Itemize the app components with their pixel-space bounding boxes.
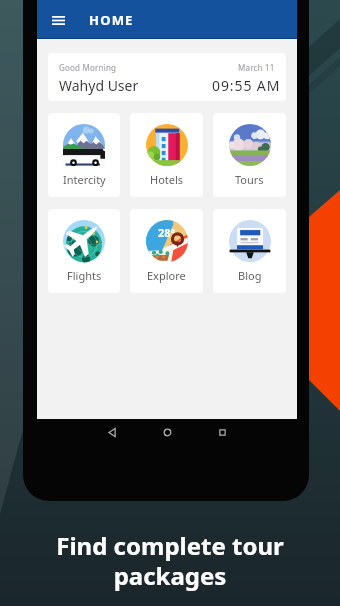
button[interactable]: 28°	[130, 209, 203, 293]
staticText: Flights	[67, 268, 102, 283]
button[interactable]: Flights	[48, 209, 120, 293]
staticText: Tours	[235, 172, 264, 187]
staticText: 28°	[158, 225, 176, 240]
button[interactable]: Menu	[52, 13, 65, 27]
staticText: Wahyd User	[59, 76, 139, 95]
staticText: HOME	[89, 11, 134, 29]
button[interactable]: Intercity	[48, 113, 120, 197]
button[interactable]: Back	[107, 427, 118, 438]
button[interactable]: Hotels	[130, 113, 203, 197]
staticText: Hotels	[150, 172, 184, 187]
button[interactable]: Blog	[213, 209, 286, 293]
staticText: 09:55 AM	[212, 76, 281, 95]
button[interactable]: Home	[162, 427, 173, 438]
staticText: Explore	[147, 268, 186, 283]
button[interactable]: Good Morning	[48, 53, 286, 101]
staticText: Blog	[238, 268, 262, 283]
button[interactable]: Tours	[213, 113, 286, 197]
button[interactable]: Recents	[217, 427, 228, 438]
staticText: Good Morning	[59, 62, 117, 73]
staticText: Intercity	[63, 172, 106, 187]
staticText: Find complete tour packages	[56, 529, 284, 592]
staticText: March 11	[238, 62, 275, 73]
